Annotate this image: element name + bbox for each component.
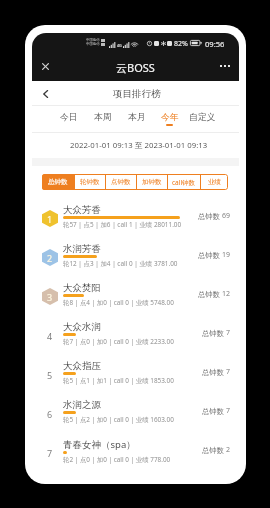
staticText: 项目排行榜 <box>113 88 161 100</box>
button[interactable]: 本月 <box>120 106 153 133</box>
staticText: 总钟数 <box>202 407 224 416</box>
staticText: 云BOSS <box>116 60 155 75</box>
staticText: 本月 <box>128 112 146 123</box>
staticText: 今年 <box>161 112 179 123</box>
button[interactable]: 轮钟数 <box>75 174 105 190</box>
staticText: 2 <box>226 445 231 455</box>
button[interactable]: 7 <box>32 431 239 470</box>
staticText: 5 <box>47 369 53 381</box>
staticText: 69 <box>222 211 231 221</box>
staticText: 大众芳香 <box>63 204 101 216</box>
staticText: 总钟数 <box>198 290 220 299</box>
staticText: 水润之源 <box>63 399 101 411</box>
staticText: 轮8 | 点4 | 加0 | call 0 | 业绩 5748.00 <box>63 298 174 307</box>
staticText: 总钟数 <box>202 329 224 338</box>
button[interactable]: 5 <box>32 353 239 392</box>
staticText: 业绩 <box>208 178 221 186</box>
button[interactable]: Close <box>36 57 54 75</box>
staticText: 7 <box>47 447 53 459</box>
staticText: call钟数 <box>172 178 196 187</box>
button[interactable]: call钟数 <box>168 174 200 190</box>
button[interactable]: 业绩 <box>201 174 228 190</box>
staticText: 点钟数 <box>111 178 131 186</box>
staticText: 总钟数 <box>48 178 68 186</box>
staticText: 19 <box>222 250 231 260</box>
button[interactable]: More options <box>216 57 234 75</box>
button[interactable]: 6 <box>32 392 239 431</box>
staticText: 轮7 | 点0 | 加0 | call 0 | 业绩 2233.00 <box>63 337 174 346</box>
staticText: 轮5 | 点2 | 加0 | call 0 | 业绩 1603.00 <box>63 415 174 424</box>
staticText: 2022-01-01 09:13 至 2023-01-01 09:13 <box>70 140 208 151</box>
button[interactable]: Back <box>36 85 54 103</box>
staticText: 4G <box>117 43 122 48</box>
staticText: 轮钟数 <box>80 178 100 186</box>
button[interactable]: 点钟数 <box>106 174 136 190</box>
staticText: 7 <box>226 406 231 416</box>
button[interactable]: 1 <box>32 197 239 236</box>
staticText: 6 <box>47 408 53 420</box>
staticText: 3 <box>47 291 53 303</box>
staticText: 今日 <box>60 112 78 123</box>
staticText: 总钟数 <box>198 251 220 260</box>
staticText: 总钟数 <box>198 212 220 221</box>
button[interactable]: 本周 <box>86 106 120 133</box>
staticText: 中国电信 <box>86 38 100 42</box>
staticText: 轮57 | 点5 | 加6 | call 1 | 业绩 28011.00 <box>63 220 182 229</box>
staticText: 水润芳香 <box>63 243 101 255</box>
button[interactable]: 加钟数 <box>137 174 167 190</box>
staticText: 轮5 | 点1 | 加1 | call 0 | 业绩 1853.00 <box>63 376 174 385</box>
staticText: 自定义 <box>189 112 216 123</box>
button[interactable]: 自定义 <box>186 106 219 133</box>
staticText: 大众水润 <box>63 321 101 333</box>
staticText: 青春女神（spa） <box>63 438 136 451</box>
staticText: 4 <box>47 330 53 342</box>
staticText: 大众指压 <box>63 360 101 372</box>
staticText: 本周 <box>94 112 112 123</box>
staticText: 总钟数 <box>202 368 224 377</box>
button[interactable]: 3 <box>32 275 239 314</box>
staticText: 轮2 | 点0 | 加0 | call 0 | 业绩 778.00 <box>63 455 171 464</box>
staticText: 大众焚阳 <box>63 282 101 294</box>
staticText: 2 <box>47 252 53 264</box>
staticText: 7 <box>226 328 231 338</box>
button[interactable]: 2 <box>32 236 239 275</box>
staticText: 12 <box>222 289 231 299</box>
staticText: 09:56 <box>205 39 225 47</box>
staticText: 1 <box>47 213 53 225</box>
staticText: 82% <box>174 39 188 47</box>
button[interactable]: 今日 <box>52 106 86 133</box>
button[interactable]: 4 <box>32 314 239 353</box>
staticText: 7 <box>226 367 231 377</box>
staticText: 总钟数 <box>202 446 224 455</box>
button[interactable]: 今年 <box>153 106 186 133</box>
button[interactable]: 总钟数 <box>42 174 74 190</box>
staticText: 中国电信 <box>86 42 100 46</box>
button[interactable]: 2022-01-01 09:13 至 2023-01-01 09:13 <box>32 133 239 158</box>
staticText: 加钟数 <box>142 178 162 186</box>
staticText: 轮12 | 点3 | 加4 | call 0 | 业绩 3781.00 <box>63 259 178 268</box>
